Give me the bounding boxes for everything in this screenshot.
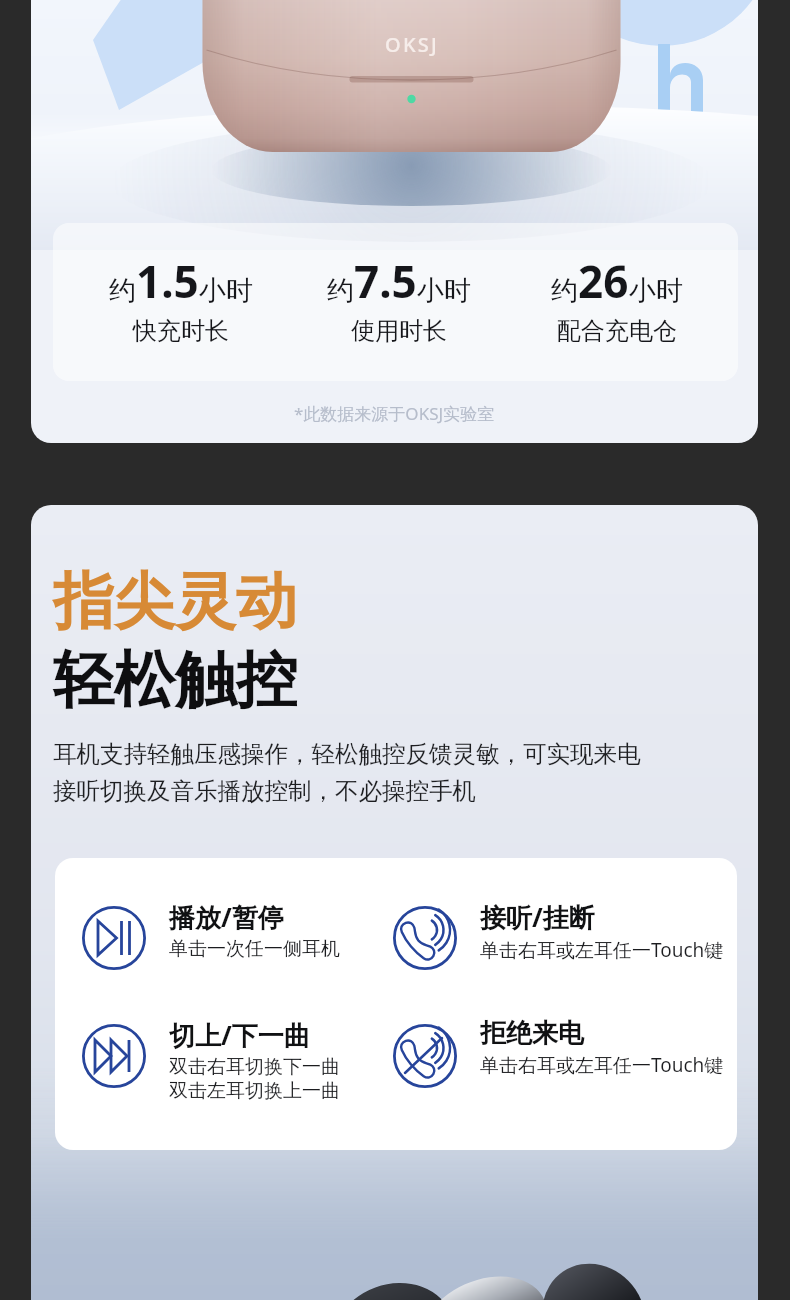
staticText: 双击右耳切换下一曲 <box>169 1055 340 1079</box>
staticText: 小时 <box>199 274 253 308</box>
staticText: 1.5 <box>136 251 199 311</box>
staticText: 使用时长 <box>351 316 447 346</box>
staticText: 单击一次任一侧耳机 <box>169 937 340 961</box>
staticText: 拒绝来电 <box>480 1017 584 1050</box>
staticText: 指尖灵动 <box>53 563 297 640</box>
staticText: 快充时长 <box>133 316 229 346</box>
other: 接听 / 挂断 <box>393 906 457 970</box>
staticText: OKSJ <box>385 31 439 58</box>
staticText: 耳机支持轻触压感操作，轻松触控反馈灵敏，可实现来电 接听切换及音乐播放控制，不必… <box>53 739 641 806</box>
button[interactable]: 切换上一曲 / 下一曲 <box>82 1024 340 1110</box>
staticText: 26 <box>578 251 629 311</box>
staticText: 切上/下一曲 <box>169 1017 310 1053</box>
staticText: 播放/暂停 <box>169 899 284 935</box>
staticText: 约 <box>551 274 578 308</box>
staticText: 单击右耳或左耳任一Touch键 <box>480 937 724 963</box>
staticText: 双击左耳切换上一曲 <box>169 1079 340 1103</box>
staticText: *此数据来源于OKSJ实验室 <box>294 402 495 425</box>
staticText: 约 <box>109 274 136 308</box>
other: 拒绝来电 <box>393 1024 457 1088</box>
other: 切换上一曲 / 下一曲 <box>82 1024 146 1088</box>
staticText: 配合充电仓 <box>557 316 677 346</box>
button[interactable]: 接听 / 挂断 <box>393 906 724 970</box>
other: 播放 / 暂停 <box>82 906 146 970</box>
staticText: 单击右耳或左耳任一Touch键 <box>480 1052 724 1078</box>
button[interactable]: 拒绝来电 <box>393 1024 724 1088</box>
button[interactable]: 播放 / 暂停 <box>82 906 340 970</box>
staticText: 轻松触控 <box>53 642 297 719</box>
staticText: 小时 <box>629 274 683 308</box>
staticText: 约 <box>327 274 354 308</box>
staticText: 接听/挂断 <box>480 899 595 935</box>
staticText: 7.5 <box>354 251 417 311</box>
staticText: 小时 <box>417 274 471 308</box>
